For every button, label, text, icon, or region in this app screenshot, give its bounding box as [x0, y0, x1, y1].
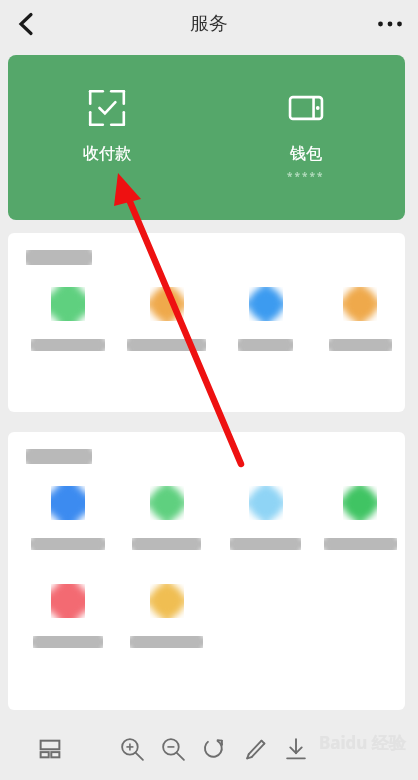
button[interactable]: Rotate [194, 729, 234, 769]
button[interactable]: Service entry [18, 287, 117, 351]
button[interactable]: Service entry [18, 584, 117, 648]
button[interactable]: Service entry [216, 486, 315, 550]
button[interactable]: Edit [235, 729, 275, 769]
button[interactable]: Download [276, 729, 316, 769]
staticText: ***** [287, 169, 325, 183]
button[interactable]: Layout [30, 729, 70, 769]
staticText: 钱包 [290, 144, 322, 164]
staticText: 服务 [190, 12, 228, 36]
button[interactable]: Service entry [216, 287, 315, 351]
staticText: Baidu 经验 [319, 731, 406, 754]
button[interactable]: Service entry [117, 584, 216, 648]
button[interactable]: Service entry [315, 486, 405, 550]
button[interactable]: Service entry [18, 486, 117, 550]
button[interactable]: 钱包 [206, 55, 405, 220]
button[interactable]: Service entry [315, 287, 405, 351]
button[interactable]: Service entry [117, 486, 216, 550]
button[interactable]: Zoom in [112, 729, 152, 769]
button[interactable]: Zoom out [153, 729, 193, 769]
button[interactable]: Service entry [117, 287, 216, 351]
button[interactable]: 收付款 [8, 55, 206, 220]
staticText: 收付款 [83, 144, 131, 164]
button[interactable]: More options [368, 2, 412, 46]
button[interactable]: Back [4, 2, 48, 46]
